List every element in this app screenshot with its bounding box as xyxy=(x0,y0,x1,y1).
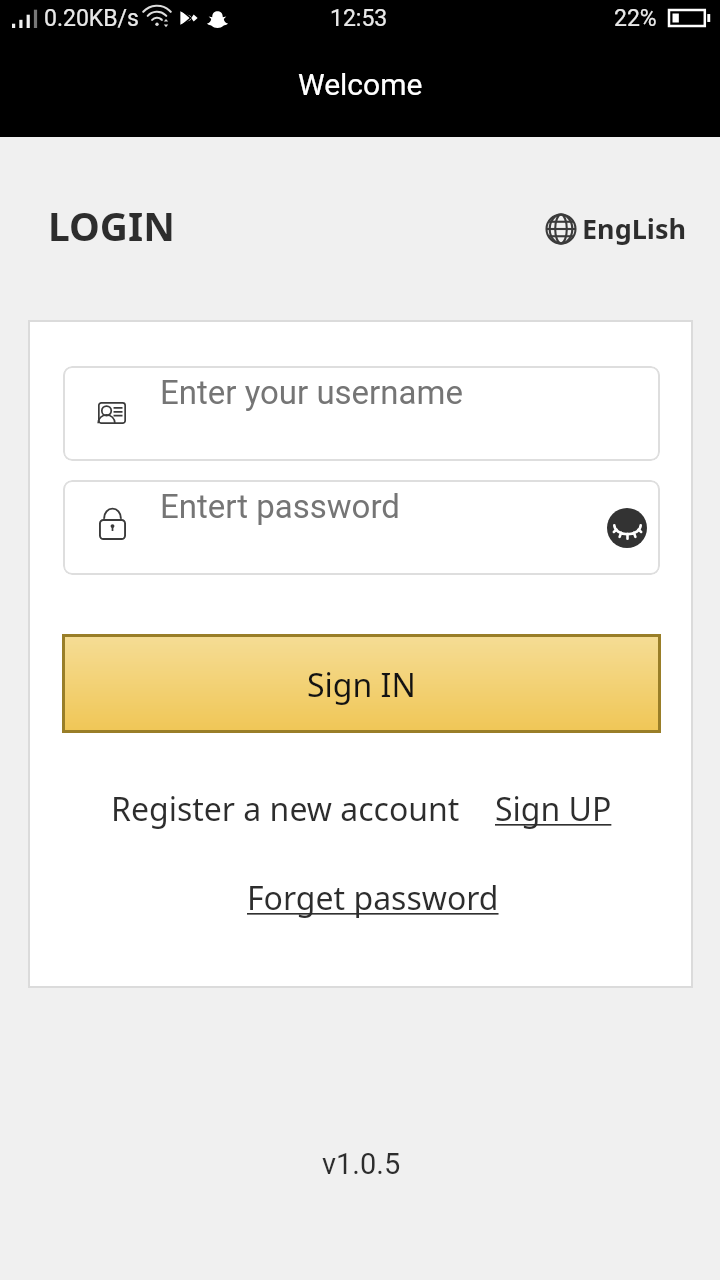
staticText: v1.0.5 xyxy=(322,1147,401,1181)
button[interactable]: Forget password xyxy=(237,870,509,926)
staticText: Sign IN xyxy=(307,663,416,707)
staticText: Sign UP xyxy=(495,787,612,831)
staticText: 22% xyxy=(614,5,657,32)
staticText: LOGIN xyxy=(48,199,175,252)
button[interactable]: Sign IN xyxy=(62,634,661,733)
staticText: 0.20KB/s xyxy=(44,5,139,32)
button[interactable]: Show password xyxy=(607,508,647,548)
staticText: Entert password xyxy=(160,487,400,526)
button[interactable]: Enter your username xyxy=(63,366,660,461)
button[interactable]: EngLish xyxy=(533,198,699,259)
staticText: Register a new account xyxy=(111,787,460,831)
staticText: EngLish xyxy=(582,210,687,247)
staticText: Enter your username xyxy=(160,373,463,412)
staticText: Forget password xyxy=(247,876,499,920)
button[interactable]: Entert password xyxy=(63,480,660,575)
button[interactable]: Sign UP xyxy=(485,781,622,837)
staticText: 12:53 xyxy=(330,5,388,32)
staticText: Welcome xyxy=(298,67,423,102)
